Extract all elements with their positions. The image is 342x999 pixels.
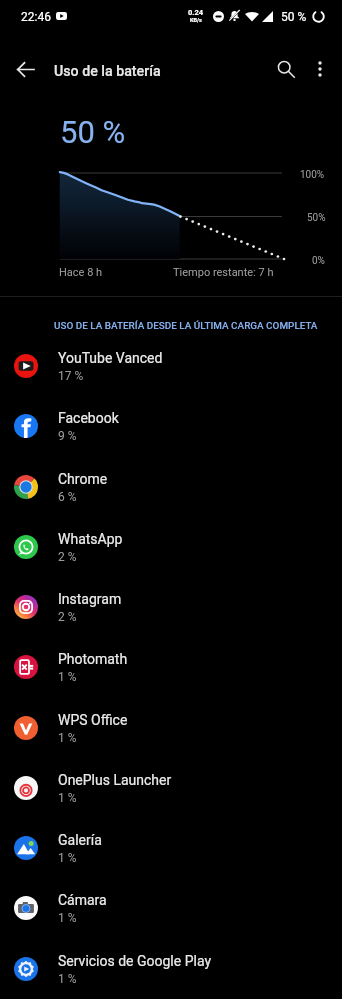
staticText: 1 % [58, 670, 77, 684]
button[interactable]: Cámara [0, 878, 342, 938]
staticText: Chrome [58, 471, 108, 487]
staticText: 22:46 [21, 10, 51, 24]
staticText: 1 % [58, 851, 77, 865]
button[interactable]: Servicios de Google Play [0, 939, 342, 999]
staticText: Photomath [58, 651, 128, 667]
staticText: Hace 8 h [59, 266, 103, 279]
button[interactable]: Más opciones [300, 49, 340, 89]
button[interactable]: Chrome [0, 457, 342, 517]
button[interactable]: WhatsApp [0, 517, 342, 577]
staticText: 1 % [58, 911, 77, 925]
staticText: USO DE LA BATERÍA DESDE LA ÚLTIMA CARGA … [54, 320, 318, 332]
staticText: 100% [300, 169, 325, 181]
staticText: 0% [312, 255, 325, 267]
staticText: 0.24 [188, 8, 204, 17]
button[interactable]: Galería [0, 818, 342, 878]
staticText: 1 % [58, 731, 77, 745]
button[interactable]: Photomath [0, 637, 342, 697]
staticText: KB/s [190, 17, 202, 23]
staticText: 2 % [58, 610, 77, 624]
staticText: 1 % [58, 972, 77, 986]
staticText: WhatsApp [58, 531, 123, 547]
staticText: Tiempo restante: 7 h [173, 266, 274, 279]
staticText: Uso de la batería [54, 63, 161, 80]
staticText: Facebook [58, 410, 119, 426]
button[interactable]: YouTube Vanced [0, 336, 342, 396]
staticText: OnePlus Launcher [58, 772, 172, 788]
button[interactable]: WPS Office [0, 698, 342, 758]
button[interactable]: Buscar [266, 49, 306, 89]
staticText: 50 % [60, 114, 126, 150]
staticText: Cámara [58, 892, 107, 908]
staticText: 6 % [58, 490, 77, 504]
staticText: 2 % [58, 550, 77, 564]
button[interactable]: Facebook [0, 396, 342, 456]
staticText: 50 % [281, 10, 307, 24]
button[interactable]: Instagram [0, 577, 342, 637]
staticText: 1 % [58, 791, 77, 805]
button[interactable]: OnePlus Launcher [0, 758, 342, 818]
staticText: Galería [58, 832, 102, 848]
staticText: WPS Office [58, 712, 128, 728]
staticText: 17 % [58, 369, 84, 383]
button[interactable]: Atrás [5, 49, 45, 89]
staticText: Servicios de Google Play [58, 953, 212, 969]
staticText: Instagram [58, 591, 122, 607]
staticText: 50% [307, 212, 326, 224]
staticText: YouTube Vanced [58, 350, 163, 366]
staticText: 9 % [58, 429, 77, 443]
